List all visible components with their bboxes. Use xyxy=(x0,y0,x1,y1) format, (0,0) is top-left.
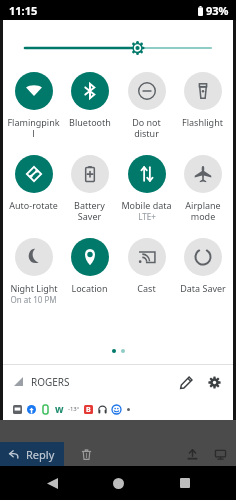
button[interactable]: Do not distur xyxy=(120,72,173,139)
staticText: ROGERS xyxy=(31,375,70,389)
button[interactable]: Back xyxy=(37,468,67,498)
staticText: Bluetooth xyxy=(69,116,111,128)
button[interactable]: Auto-rotate xyxy=(7,155,60,211)
button[interactable]: Brightness xyxy=(3,40,233,56)
staticText: LTE+ xyxy=(138,211,156,222)
button[interactable]: Flashlight xyxy=(176,72,229,128)
staticText: w xyxy=(55,402,64,416)
button[interactable]: Settings xyxy=(201,369,227,395)
staticText: 11:15 xyxy=(9,3,38,18)
staticText: Battery Saver xyxy=(74,199,105,222)
button[interactable]: Delete xyxy=(74,442,98,466)
button[interactable]: Night Light xyxy=(7,238,60,305)
staticText: Airplane mode xyxy=(185,199,221,222)
button[interactable]: Mobile data xyxy=(120,155,173,222)
staticText: Mobile data xyxy=(121,199,172,211)
staticText: Flashlight xyxy=(182,116,223,128)
button[interactable]: Battery Saver xyxy=(63,155,116,222)
staticText: Data Saver xyxy=(180,282,226,294)
button[interactable]: Data Saver xyxy=(176,238,229,294)
staticText: Night Light xyxy=(10,282,58,294)
button[interactable]: Airplane mode xyxy=(176,155,229,222)
button[interactable]: Location xyxy=(63,238,116,294)
staticText: Reply xyxy=(26,447,55,462)
staticText: Cast xyxy=(137,282,156,294)
button[interactable]: Cast xyxy=(120,238,173,294)
staticText: Auto-rotate xyxy=(9,199,58,211)
button[interactable]: Reply xyxy=(0,442,64,466)
staticText: B xyxy=(86,405,91,414)
staticText: Do not distur xyxy=(120,116,173,139)
button[interactable]: Edit tiles xyxy=(173,369,199,395)
staticText: On at 10 PM xyxy=(10,294,57,305)
staticText: -13° xyxy=(68,405,80,413)
button[interactable]: Flamingpinkl xyxy=(7,72,60,139)
staticText: Flamingpinkl xyxy=(7,116,60,139)
staticText: Location xyxy=(71,282,108,294)
button[interactable]: Bluetooth xyxy=(63,72,116,128)
staticText: 93% xyxy=(206,3,229,18)
button[interactable]: Cast screen xyxy=(208,442,232,466)
button[interactable]: Recents xyxy=(170,468,200,498)
button[interactable]: Share xyxy=(180,442,204,466)
button[interactable]: Home xyxy=(103,468,133,498)
